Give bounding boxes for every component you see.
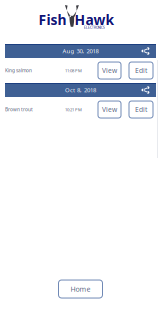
staticText: View	[102, 105, 117, 114]
button[interactable]: Share	[137, 44, 154, 58]
staticText: Edit	[135, 105, 147, 114]
staticText: Brown trout	[5, 106, 33, 113]
button[interactable]: Home	[58, 280, 102, 298]
button[interactable]: Edit	[129, 62, 153, 79]
staticText: Edit	[135, 66, 147, 75]
staticText: Oct 8, 2018	[65, 86, 96, 94]
staticText: ELECTRONICS	[84, 25, 105, 30]
staticText: Aug 30, 2018	[62, 47, 98, 55]
staticText: Fish	[38, 10, 66, 29]
button[interactable]: Share	[137, 83, 154, 97]
staticText: 11:08 PM	[65, 68, 82, 73]
staticText: Home	[70, 284, 90, 294]
staticText: 10:21 PM	[65, 107, 82, 112]
staticText: King salmon	[5, 67, 32, 74]
button[interactable]: View	[98, 62, 121, 79]
button[interactable]: Edit	[129, 101, 153, 118]
button[interactable]: View	[98, 101, 121, 118]
staticText: Hawk	[74, 10, 114, 29]
staticText: View	[102, 66, 117, 75]
